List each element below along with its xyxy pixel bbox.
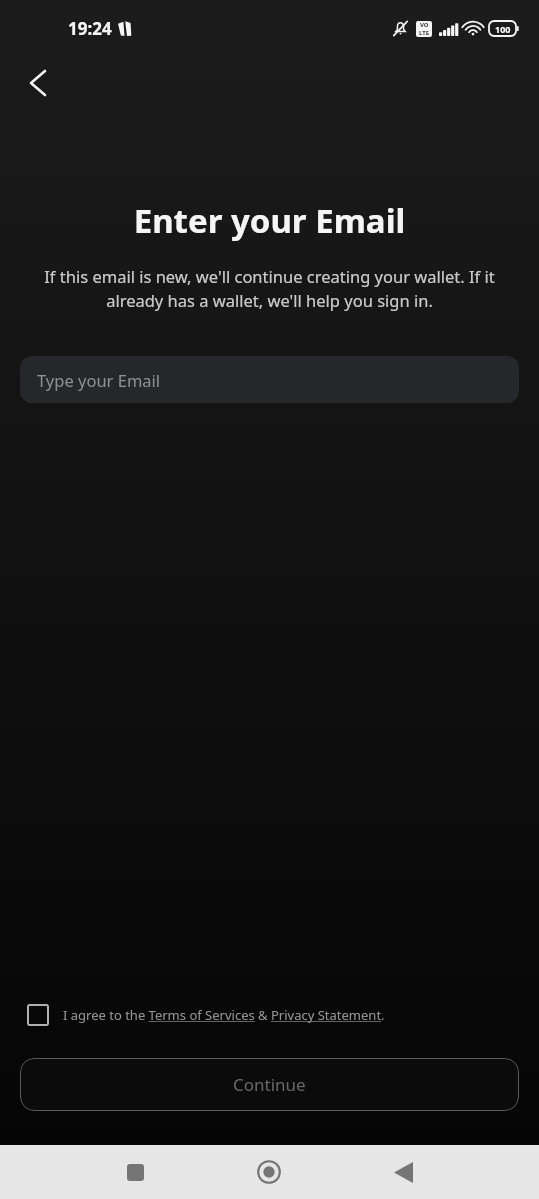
button[interactable]: I agree to the Terms of Services & Priva… xyxy=(63,1006,385,1024)
button[interactable]: Type your Email xyxy=(20,356,519,403)
button[interactable]: Back xyxy=(379,1148,427,1196)
staticText: 19:24 xyxy=(68,17,112,40)
staticText: LTE xyxy=(419,29,430,37)
staticText: Continue xyxy=(233,1073,306,1096)
staticText: If this email is new, we'll continue cre… xyxy=(28,265,511,312)
button[interactable]: Home xyxy=(245,1148,293,1196)
button[interactable]: I agree to the Terms of Services and Pri… xyxy=(21,998,55,1032)
staticText: 100 xyxy=(495,23,511,35)
staticText: Type your Email xyxy=(37,369,161,391)
button[interactable]: Back xyxy=(14,59,62,107)
button[interactable]: Recent apps xyxy=(111,1148,159,1196)
staticText: VO xyxy=(420,21,429,29)
staticText: Enter your Email xyxy=(0,198,539,243)
button[interactable]: Continue xyxy=(20,1058,519,1111)
